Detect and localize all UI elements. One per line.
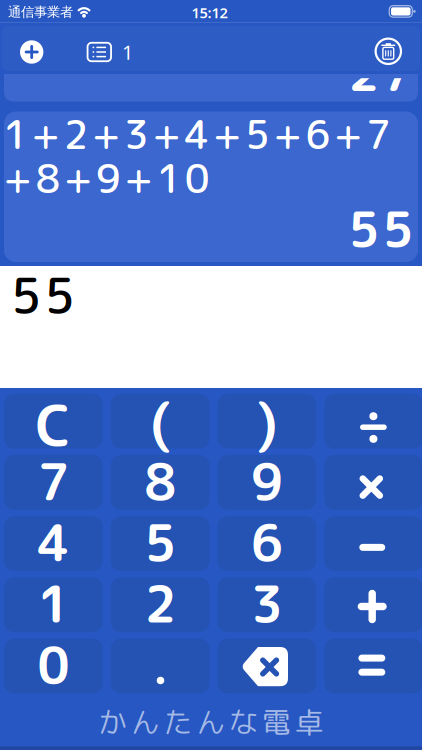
staticText: 7	[37, 446, 69, 516]
staticText: 6	[251, 508, 283, 577]
staticText: C	[35, 385, 71, 464]
staticText: +8+9+10	[3, 151, 210, 206]
staticText: かんたんな電卓	[98, 702, 324, 742]
staticText: 1	[122, 39, 133, 65]
staticText: 55	[348, 195, 413, 263]
staticText: 4	[37, 508, 69, 577]
staticText: 3	[251, 569, 283, 639]
staticText: 1+2+3+4+5+6+7	[3, 107, 391, 162]
staticText: 2	[144, 569, 176, 639]
staticText: (	[150, 385, 171, 461]
staticText: 0	[37, 630, 69, 700]
staticText: 9	[251, 446, 283, 516]
staticText: 8	[144, 446, 176, 516]
staticText: 55	[11, 262, 75, 329]
staticText: 1	[37, 569, 69, 639]
staticText: 15:12	[191, 3, 227, 22]
staticText: )	[256, 385, 277, 461]
staticText: 27	[348, 38, 413, 107]
staticText: 通信事業者	[8, 4, 73, 20]
staticText: 5	[144, 508, 176, 577]
